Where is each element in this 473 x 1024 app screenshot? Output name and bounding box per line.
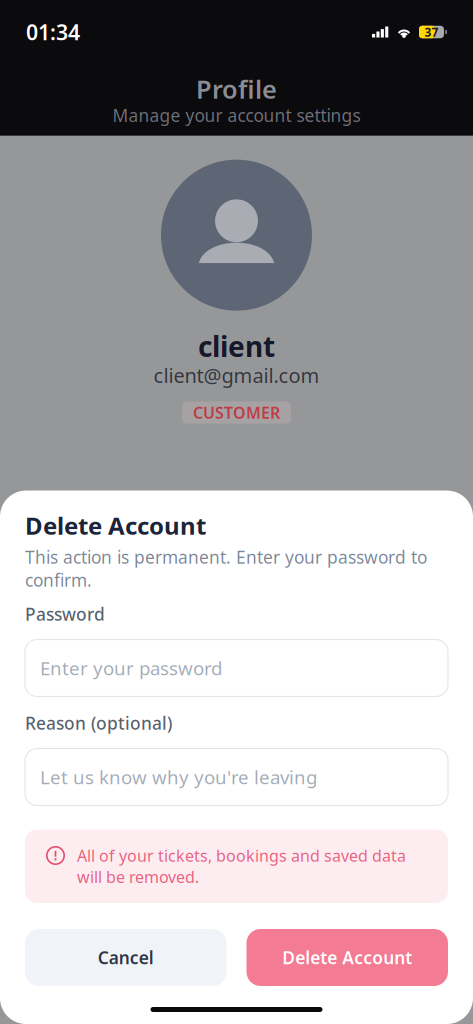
staticText: client@gmail.com: [153, 362, 319, 388]
staticText: Delete Account: [282, 946, 412, 969]
button[interactable]: Delete Account: [246, 929, 448, 986]
staticText: Password: [25, 602, 105, 625]
staticText: All of your tickets, bookings and saved …: [77, 845, 406, 887]
staticText: Profile: [196, 72, 277, 106]
staticText: Reason (optional): [25, 711, 172, 734]
staticText: Cancel: [98, 946, 154, 969]
staticText: Let us know why you're leaving: [40, 765, 317, 789]
button[interactable]: Cancel: [25, 929, 226, 986]
staticText: client: [198, 328, 275, 365]
staticText: Manage your account settings: [112, 104, 360, 127]
staticText: Delete Account: [25, 510, 206, 541]
staticText: 37: [424, 24, 438, 40]
staticText: CUSTOMER: [193, 402, 280, 423]
staticText: This action is permanent. Enter your pas…: [25, 545, 427, 591]
staticText: Enter your password: [40, 656, 222, 680]
staticText: 01:34: [26, 18, 80, 46]
